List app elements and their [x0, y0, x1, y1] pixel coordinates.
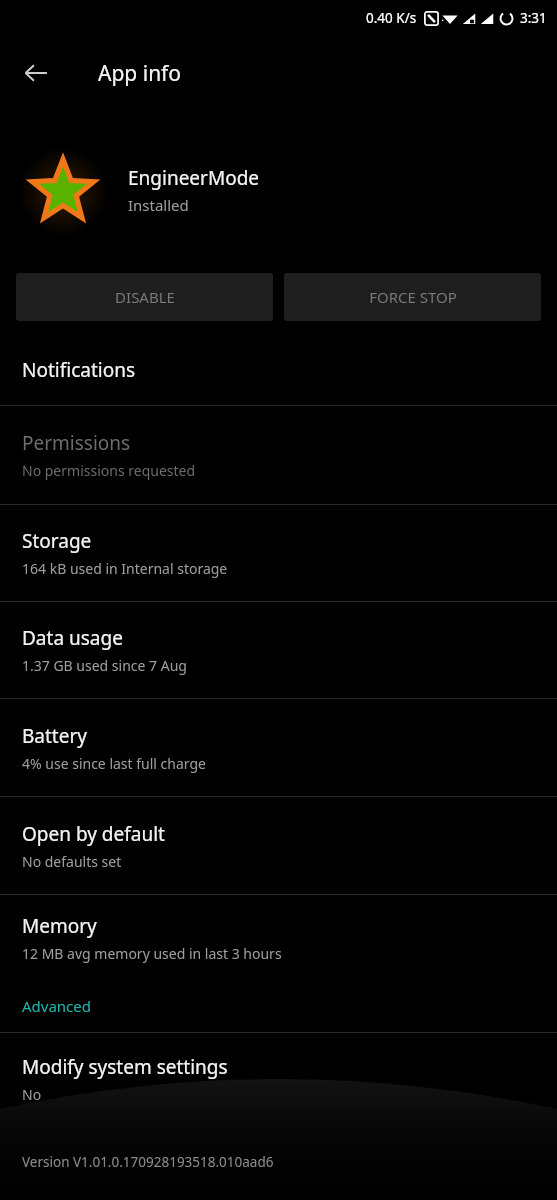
staticText: Battery [22, 723, 87, 749]
button[interactable]: Battery [0, 699, 557, 796]
staticText: Version V1.01.0.170928193518.010aad6 [22, 1153, 274, 1171]
button[interactable]: DISABLE [16, 273, 273, 321]
staticText: FORCE STOP [369, 287, 457, 307]
staticText: Advanced [22, 996, 92, 1016]
button[interactable]: FORCE STOP [284, 273, 541, 321]
staticText: Storage [22, 528, 92, 554]
staticText: EngineerMode [128, 165, 260, 191]
staticText: Modify system settings [22, 1054, 228, 1080]
button[interactable]: Memory [0, 895, 557, 980]
button[interactable]: Modify system settings [0, 1033, 557, 1125]
button[interactable]: Notifications [0, 335, 557, 405]
button[interactable]: Data usage [0, 602, 557, 698]
staticText: 3:31 [520, 9, 547, 27]
staticText: 0.40 K/s [366, 9, 417, 27]
button[interactable]: Permissions [0, 406, 557, 504]
staticText: No defaults set [22, 852, 122, 871]
staticText: Data usage [22, 625, 123, 651]
button[interactable]: Open by default [0, 797, 557, 894]
staticText: No [22, 1085, 42, 1104]
staticText: Permissions [22, 430, 131, 456]
staticText: No permissions requested [22, 461, 196, 480]
staticText: 4% use since last full charge [22, 754, 206, 773]
staticText: Notifications [22, 357, 136, 383]
staticText: 164 kB used in Internal storage [22, 559, 228, 578]
button[interactable]: Back [10, 47, 62, 99]
staticText: App info [98, 59, 182, 88]
staticText: 1.37 GB used since 7 Aug [22, 656, 187, 675]
staticText: 12 MB avg memory used in last 3 hours [22, 944, 282, 963]
staticText: DISABLE [115, 287, 175, 307]
staticText: Open by default [22, 821, 165, 847]
staticText: Installed [128, 195, 189, 215]
button[interactable]: Storage [0, 505, 557, 601]
button[interactable]: Advanced [0, 980, 557, 1032]
staticText: Memory [22, 913, 97, 939]
